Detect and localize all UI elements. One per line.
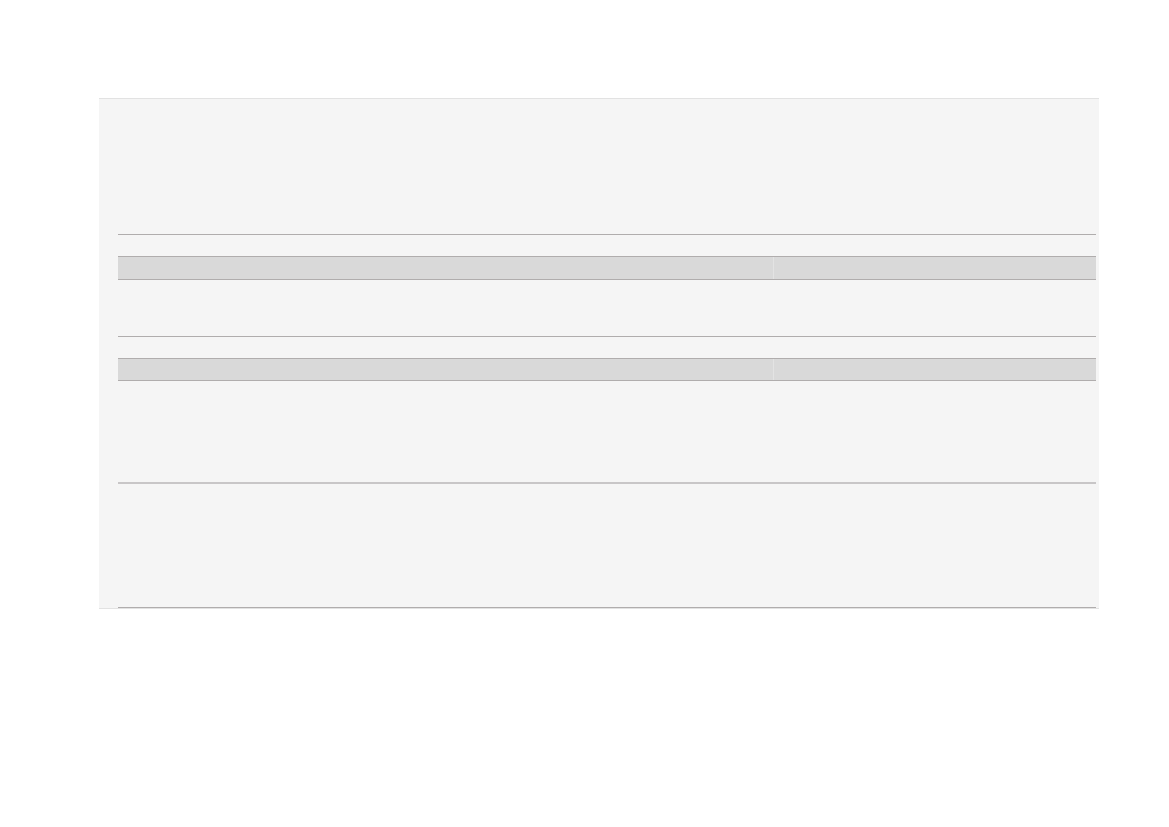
button[interactable]: Second row — [118, 358, 1096, 381]
button[interactable]: First row — [118, 256, 1096, 280]
